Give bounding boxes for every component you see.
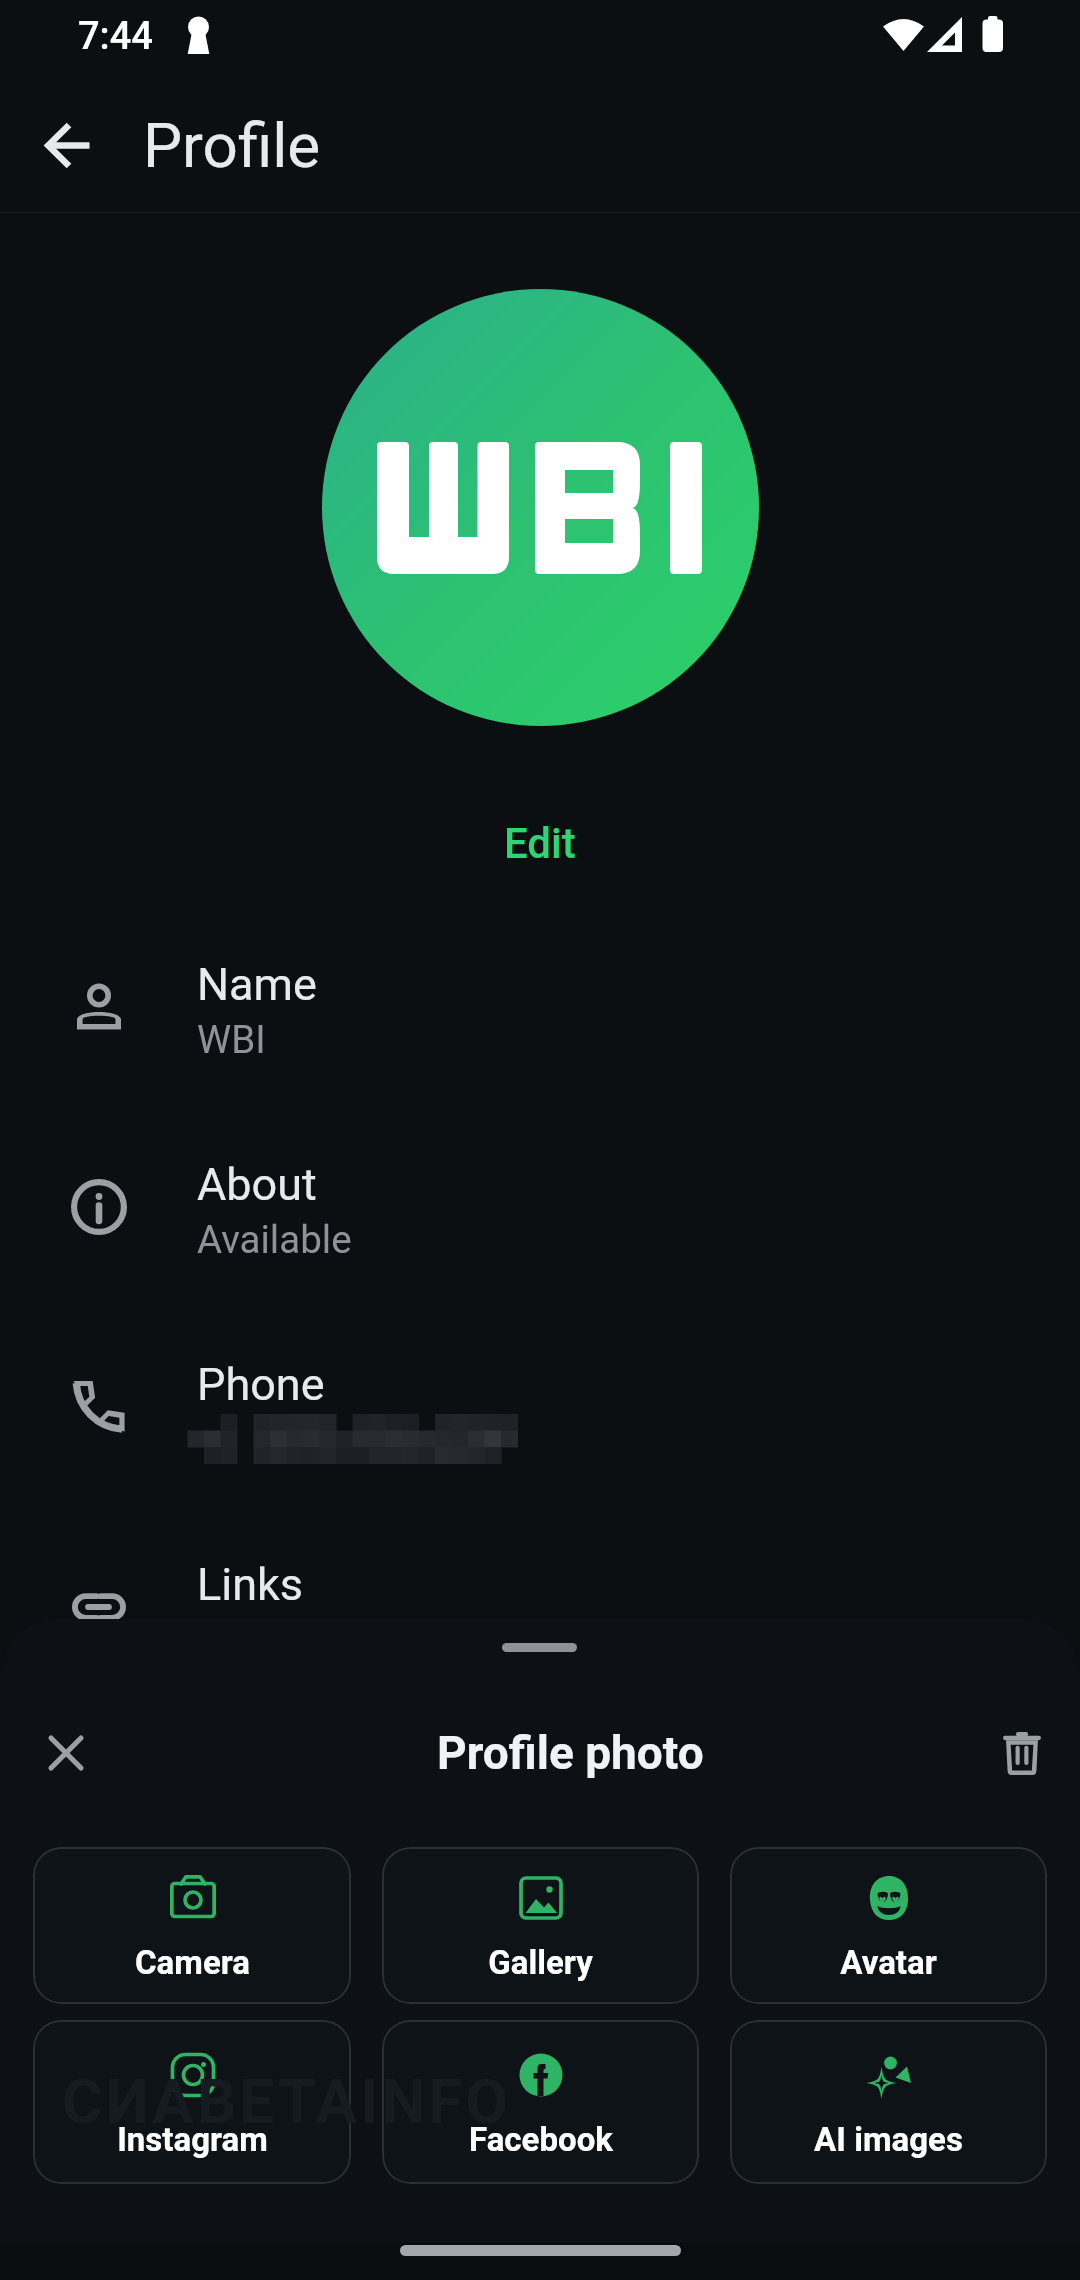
staticText: Profile photo (437, 1726, 704, 1780)
button[interactable]: Name (0, 940, 1080, 1080)
staticText: Name (197, 958, 317, 1011)
button[interactable]: Back (21, 99, 113, 191)
staticText: CИABETAINFO (62, 2065, 511, 2138)
staticText: Phone (197, 1358, 325, 1411)
staticText: Gallery (488, 1943, 593, 1982)
staticText: Edit (504, 819, 576, 868)
button[interactable]: Profile photo (322, 289, 759, 726)
button[interactable]: About (0, 1140, 1080, 1280)
staticText: Available (197, 1217, 352, 1262)
staticText: Facebook (469, 2120, 613, 2159)
button[interactable]: Phone (0, 1340, 1080, 1480)
staticText: WBI (197, 1017, 266, 1062)
staticText: Avatar (840, 1943, 937, 1982)
staticText: Links (197, 1558, 304, 1611)
staticText: Profile (143, 109, 321, 182)
button[interactable]: Facebook (382, 2020, 699, 2184)
button[interactable]: AI images (730, 2020, 1047, 2184)
button[interactable]: Camera (33, 1847, 351, 2004)
button[interactable]: Close (22, 1709, 110, 1797)
button[interactable]: Instagram (33, 2020, 351, 2184)
button[interactable]: Edit (482, 811, 598, 876)
staticText: 7:44 (78, 14, 153, 59)
staticText: About (197, 1158, 317, 1211)
staticText: Camera (135, 1943, 250, 1982)
staticText: Instagram (117, 2120, 268, 2159)
button[interactable]: Gallery (382, 1847, 699, 2004)
staticText: AI images (814, 2120, 963, 2159)
button[interactable]: Avatar (730, 1847, 1047, 2004)
button[interactable]: Links (0, 1540, 1080, 1630)
button[interactable]: Delete (978, 1709, 1066, 1797)
